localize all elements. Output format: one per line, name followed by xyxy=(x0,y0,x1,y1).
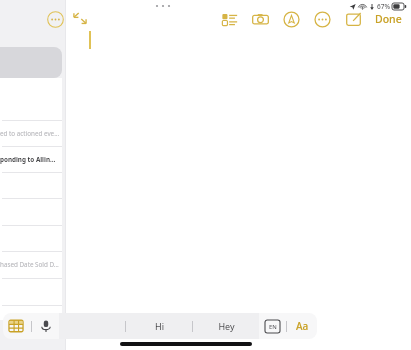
button[interactable]: Checklist xyxy=(221,11,238,28)
staticText: Hi xyxy=(155,320,164,332)
staticText: Done xyxy=(375,12,402,26)
staticText: Aa xyxy=(296,319,309,333)
button[interactable]: ponding to Allin… xyxy=(0,151,62,167)
button[interactable]: More xyxy=(314,11,331,28)
staticText: Hey xyxy=(218,320,235,332)
button[interactable]: Camera xyxy=(252,11,269,28)
button[interactable]: Compose xyxy=(345,11,362,28)
button[interactable]: Expand note xyxy=(72,10,88,26)
button[interactable]: Markup xyxy=(283,11,300,28)
button[interactable]: More options xyxy=(47,11,64,28)
button[interactable]: ed to actioned eve… xyxy=(0,125,62,141)
staticText: EN xyxy=(269,323,277,331)
button[interactable]: Dictate xyxy=(39,319,53,333)
staticText: hased Date Sold D… xyxy=(0,260,59,269)
staticText: 67% xyxy=(377,2,390,11)
button[interactable]: Aa xyxy=(294,319,311,333)
button[interactable]: Language EN xyxy=(265,320,280,333)
button[interactable]: Hey xyxy=(193,313,259,339)
button[interactable]: Insert table xyxy=(8,318,24,334)
staticText: ponding to Allin… xyxy=(0,155,56,164)
button[interactable]: Hi xyxy=(126,313,192,339)
button[interactable]: Done xyxy=(372,9,405,29)
button[interactable]: hased Date Sold D… xyxy=(0,256,62,272)
staticText: ed to actioned eve… xyxy=(0,129,60,138)
